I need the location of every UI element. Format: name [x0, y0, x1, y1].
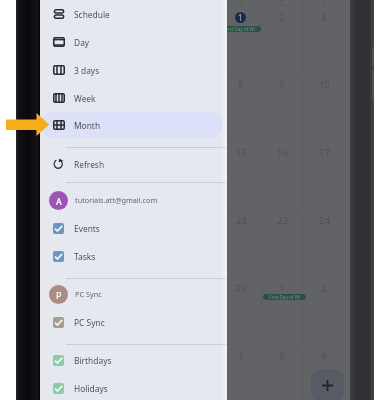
staticText: Holidays [74, 383, 108, 394]
staticText: 1 [238, 12, 243, 23]
staticText: PC Sync [75, 289, 102, 299]
staticText: 8 [279, 350, 285, 362]
staticText: 3 days [74, 65, 100, 76]
staticText: Refresh [74, 159, 105, 170]
staticText: Day [74, 37, 90, 48]
staticText: First Day of Wi [224, 26, 255, 32]
button[interactable]: First Day of Wi [263, 294, 306, 300]
staticText: 22 [236, 214, 247, 226]
button[interactable]: Refresh [40, 150, 227, 178]
staticText: 29 [236, 282, 247, 294]
button[interactable]: Day [40, 28, 227, 56]
staticText: 15 [236, 146, 247, 158]
staticText: 8 [238, 78, 244, 90]
staticText: tutorials.att@gmail.com [75, 195, 158, 205]
staticText: 24 [319, 214, 330, 226]
staticText: 9 [279, 78, 285, 90]
staticText: Schedule [74, 9, 110, 20]
staticText: Events [74, 223, 100, 234]
staticText: Birthdays [74, 355, 112, 366]
button[interactable]: Week [40, 84, 227, 112]
button[interactable]: Tasks [40, 242, 227, 270]
staticText: F [280, 0, 285, 6]
button[interactable]: Create event [311, 369, 344, 400]
staticText: 16 [277, 146, 288, 158]
staticText: 2 [321, 282, 327, 294]
staticText: 10 [319, 78, 330, 90]
staticText: 3 [321, 11, 327, 23]
staticText: Week [74, 93, 96, 104]
staticText: PC Sync [74, 317, 105, 328]
button[interactable]: Schedule [40, 0, 227, 28]
staticText: First Day of Wi [269, 294, 300, 300]
staticText: Tasks [74, 251, 96, 262]
staticText: 23 [277, 214, 288, 226]
button[interactable]: PC Sync [40, 308, 227, 336]
staticText: 2 [279, 11, 285, 23]
button[interactable]: Birthdays [40, 346, 227, 374]
staticText: 7 [238, 350, 244, 362]
button[interactable]: Month [40, 111, 227, 139]
button[interactable]: First Day of Wi [218, 26, 261, 32]
button[interactable]: 3 days [40, 56, 227, 84]
button[interactable]: A [40, 186, 227, 214]
button[interactable]: Holidays [40, 374, 227, 400]
staticText: Month [74, 120, 101, 131]
button[interactable]: Events [40, 214, 227, 242]
staticText: 1 [279, 282, 285, 294]
staticText: 17 [319, 146, 330, 158]
staticText: 9 [321, 350, 327, 362]
staticText: A [56, 195, 62, 207]
button[interactable]: P [40, 280, 227, 308]
button[interactable]: 1 [235, 12, 246, 23]
staticText: P [56, 289, 62, 301]
staticText: S [322, 0, 327, 6]
